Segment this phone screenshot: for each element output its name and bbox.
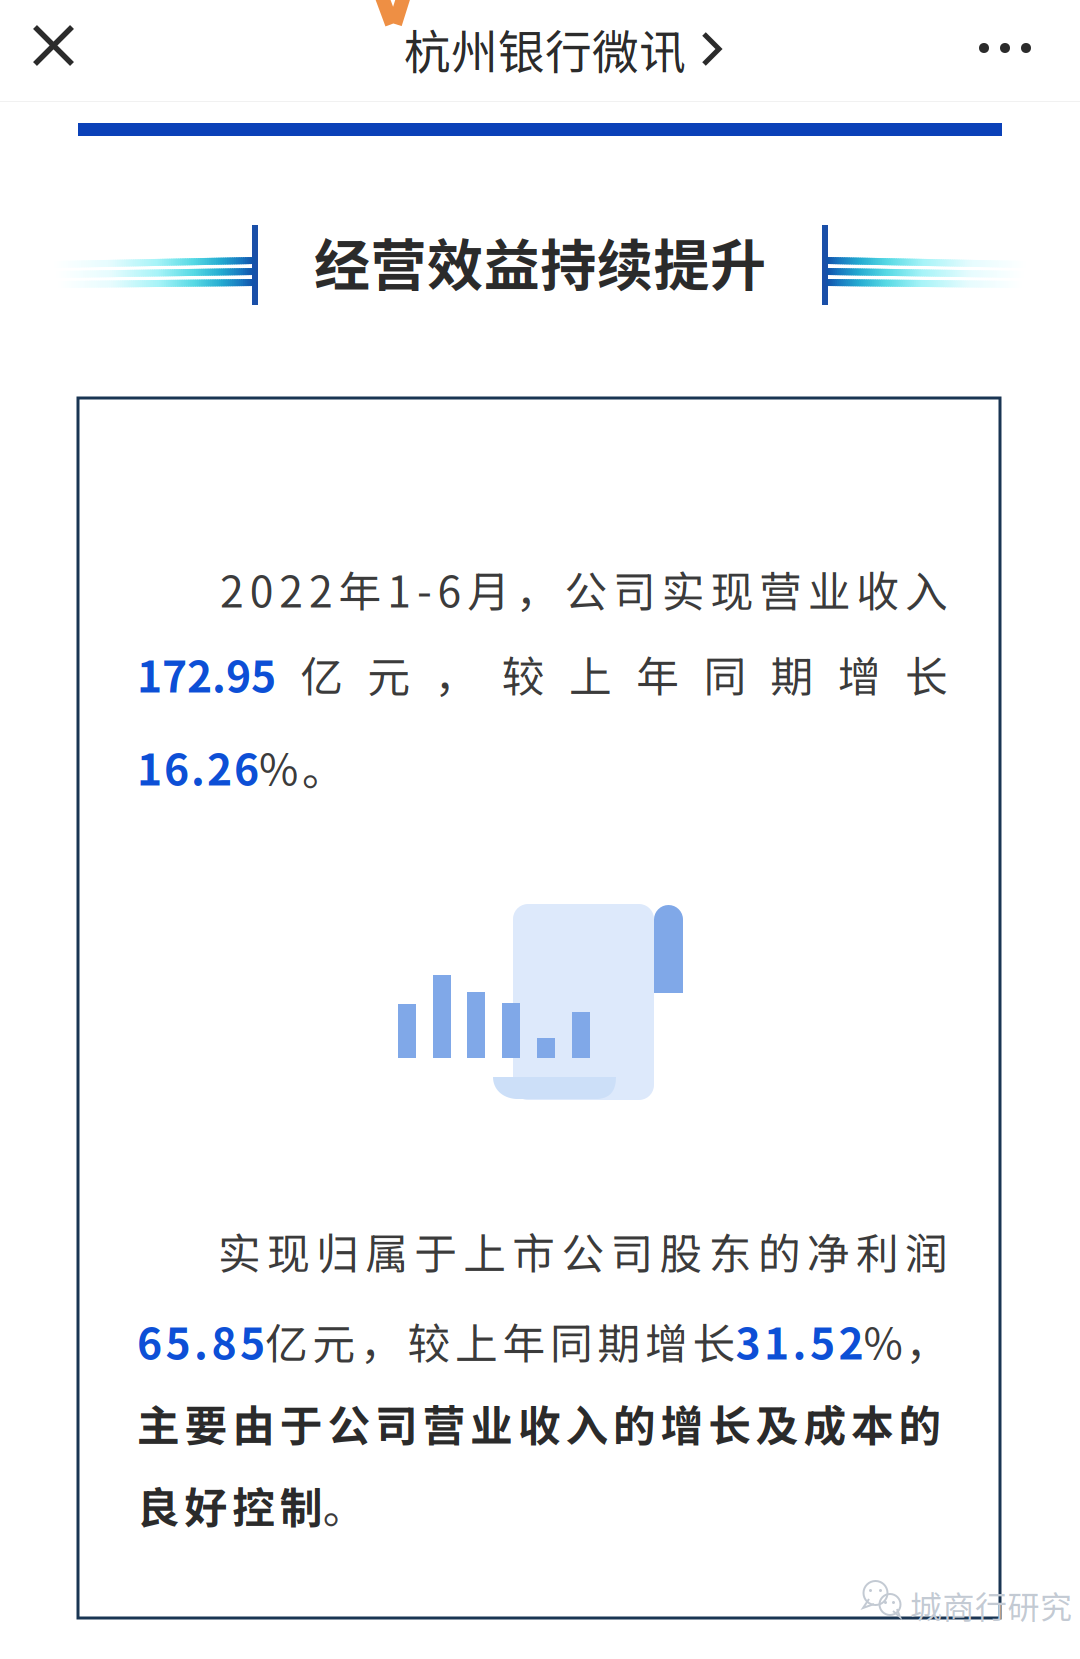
staticText: 杭州银行微讯	[404, 15, 686, 83]
staticText: 净	[807, 1220, 850, 1282]
staticText: 业	[808, 558, 851, 620]
staticText: 利	[856, 1220, 899, 1282]
staticText: 司	[613, 558, 656, 620]
staticText: 年	[339, 558, 382, 620]
staticText: 上	[569, 643, 612, 705]
staticText: 公	[561, 1220, 604, 1282]
staticText: 0	[250, 558, 274, 620]
staticText: 同	[703, 643, 746, 705]
staticText: 现	[267, 1220, 310, 1282]
staticText: 实	[662, 558, 705, 620]
staticText: 司	[611, 1220, 654, 1282]
staticText: 增	[838, 643, 881, 705]
staticText: 主要由于公司营业收入的增长及成本的	[137, 1392, 942, 1454]
staticText: 2	[220, 558, 244, 620]
staticText: 经营效益持续提升	[314, 221, 766, 302]
staticText: 实	[218, 1220, 261, 1282]
staticText: 东	[709, 1220, 752, 1282]
button[interactable]: 杭州银行微讯	[404, 18, 734, 80]
staticText: %，	[863, 1310, 948, 1372]
button[interactable]: More options	[950, 16, 1060, 80]
staticText: 良好控制	[137, 1474, 323, 1536]
staticText: 入	[905, 558, 948, 620]
staticText: 收	[856, 558, 899, 620]
staticText: 现	[710, 558, 753, 620]
staticText: 6	[437, 558, 461, 620]
button[interactable]: Close	[18, 10, 89, 81]
staticText: 营	[759, 558, 802, 620]
staticText: 股	[660, 1220, 703, 1282]
staticText: 期	[771, 643, 814, 705]
staticText: 亿	[300, 643, 343, 705]
staticText: ，	[435, 643, 478, 705]
staticText: 城商行研究	[910, 1582, 1072, 1628]
staticText: 市	[512, 1220, 555, 1282]
staticText: 亿元，较上年同期增长	[265, 1310, 735, 1372]
staticText: 属	[365, 1220, 408, 1282]
staticText: 较	[502, 643, 545, 705]
staticText: 长	[905, 643, 948, 705]
staticText: 上	[463, 1220, 506, 1282]
staticText: 归	[316, 1220, 359, 1282]
staticText: 润	[905, 1220, 948, 1282]
staticText: 2	[279, 558, 303, 620]
staticText: 月	[467, 558, 510, 620]
staticText: 172.95	[137, 643, 276, 705]
staticText: 的	[758, 1220, 801, 1282]
staticText: 。	[323, 1474, 366, 1536]
staticText: 公	[564, 558, 607, 620]
staticText: 31.52	[735, 1310, 863, 1372]
staticText: ，	[516, 558, 559, 620]
staticText: 2	[309, 558, 333, 620]
staticText: 65.85	[137, 1310, 265, 1372]
staticText: %。	[259, 736, 345, 798]
staticText: -	[417, 558, 432, 620]
staticText: 1	[387, 558, 411, 620]
staticText: 于	[414, 1220, 457, 1282]
staticText: 16.26	[137, 736, 259, 798]
staticText: 元	[367, 643, 410, 705]
staticText: 年	[636, 643, 679, 705]
